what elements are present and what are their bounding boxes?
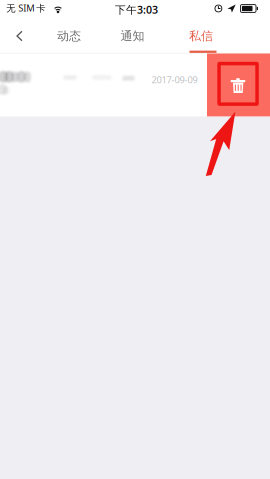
button[interactable]: Delete <box>207 53 270 116</box>
staticText: 下午3:03 <box>115 2 158 17</box>
staticText: 私信 <box>189 29 213 43</box>
staticText: 无 SIM 卡 <box>6 2 45 14</box>
button[interactable]: 动态 <box>42 21 96 51</box>
staticText: 2017-09-09 <box>152 73 198 86</box>
button[interactable]: Back <box>5 22 34 50</box>
button[interactable]: 通知 <box>105 21 159 51</box>
staticText: 动态 <box>57 29 81 43</box>
staticText: 通知 <box>120 29 144 43</box>
button[interactable]: 私信 <box>174 21 228 53</box>
